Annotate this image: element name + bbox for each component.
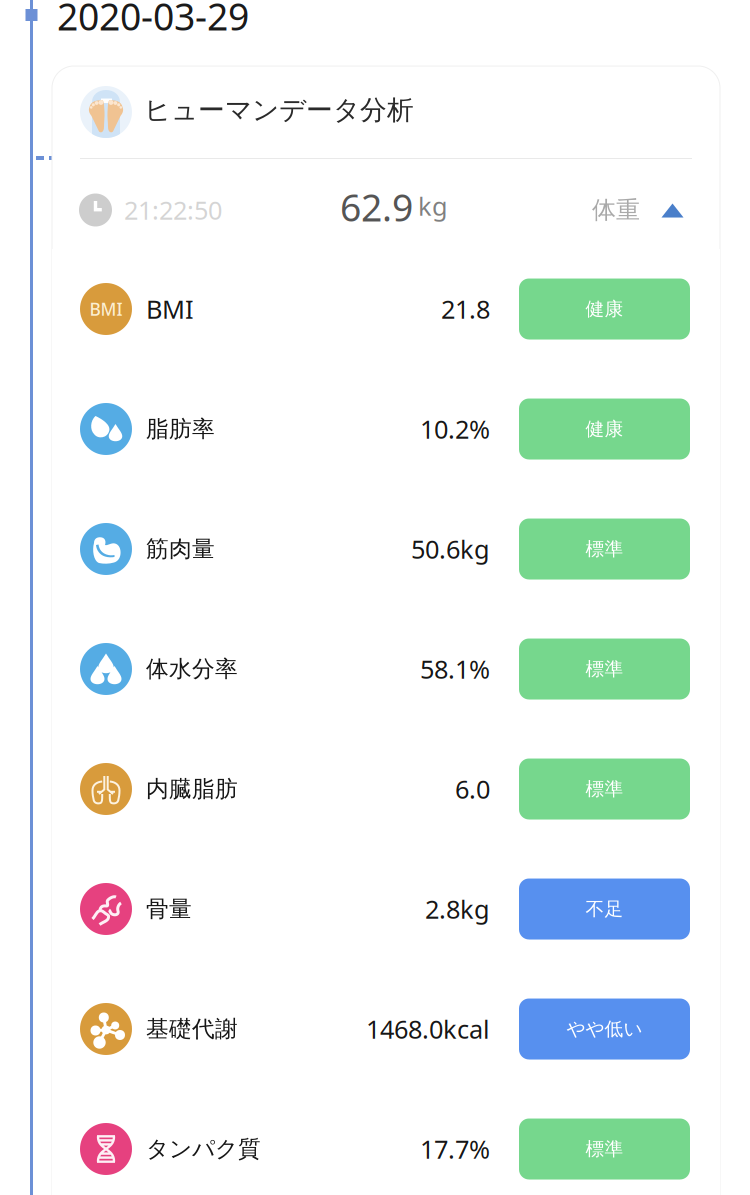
staticText: 58.1% [420, 652, 490, 686]
staticText: やや低い [566, 1017, 642, 1040]
staticText: 21:22:50 [124, 193, 222, 227]
staticText: 標準 [585, 777, 623, 800]
staticText: 2.8kg [425, 892, 490, 926]
staticText: 1468.0kcal [366, 1012, 490, 1046]
staticText: 不足 [585, 897, 623, 920]
staticText: 体重 [592, 195, 640, 225]
staticText: 62.9 [340, 182, 413, 232]
button[interactable]: タンパク質 [52, 1089, 720, 1195]
staticText: 10.2% [420, 412, 490, 446]
staticText: ヒューマンデータ分析 [144, 94, 414, 126]
staticText: BMI [89, 297, 122, 320]
button[interactable]: 筋肉量 [52, 489, 720, 609]
staticText: 50.6kg [411, 532, 490, 566]
staticText: タンパク質 [146, 1135, 261, 1163]
button[interactable]: 基礎代謝 [52, 969, 720, 1089]
button[interactable]: 脂肪率 [52, 369, 720, 489]
button[interactable]: BMI [52, 249, 720, 369]
button[interactable]: 骨量 [52, 849, 720, 969]
staticText: 基礎代謝 [146, 1015, 238, 1043]
button[interactable]: 体水分率 [52, 609, 720, 729]
staticText: 骨量 [146, 895, 192, 923]
staticText: 内臓脂肪 [146, 775, 238, 803]
staticText: 標準 [585, 1137, 623, 1160]
staticText: BMI [146, 292, 194, 326]
staticText: 健康 [585, 297, 623, 320]
staticText: kg [418, 189, 448, 223]
staticText: 21.8 [441, 292, 490, 326]
staticText: 健康 [585, 417, 623, 440]
staticText: 標準 [585, 657, 623, 680]
staticText: 体水分率 [146, 655, 238, 683]
button[interactable]: 内臓脂肪 [52, 729, 720, 849]
staticText: 脂肪率 [146, 415, 215, 443]
staticText: 2020-03-29 [57, 0, 249, 41]
staticText: 6.0 [455, 772, 490, 806]
staticText: 筋肉量 [146, 535, 215, 563]
staticText: 17.7% [420, 1132, 490, 1166]
staticText: 標準 [585, 537, 623, 560]
